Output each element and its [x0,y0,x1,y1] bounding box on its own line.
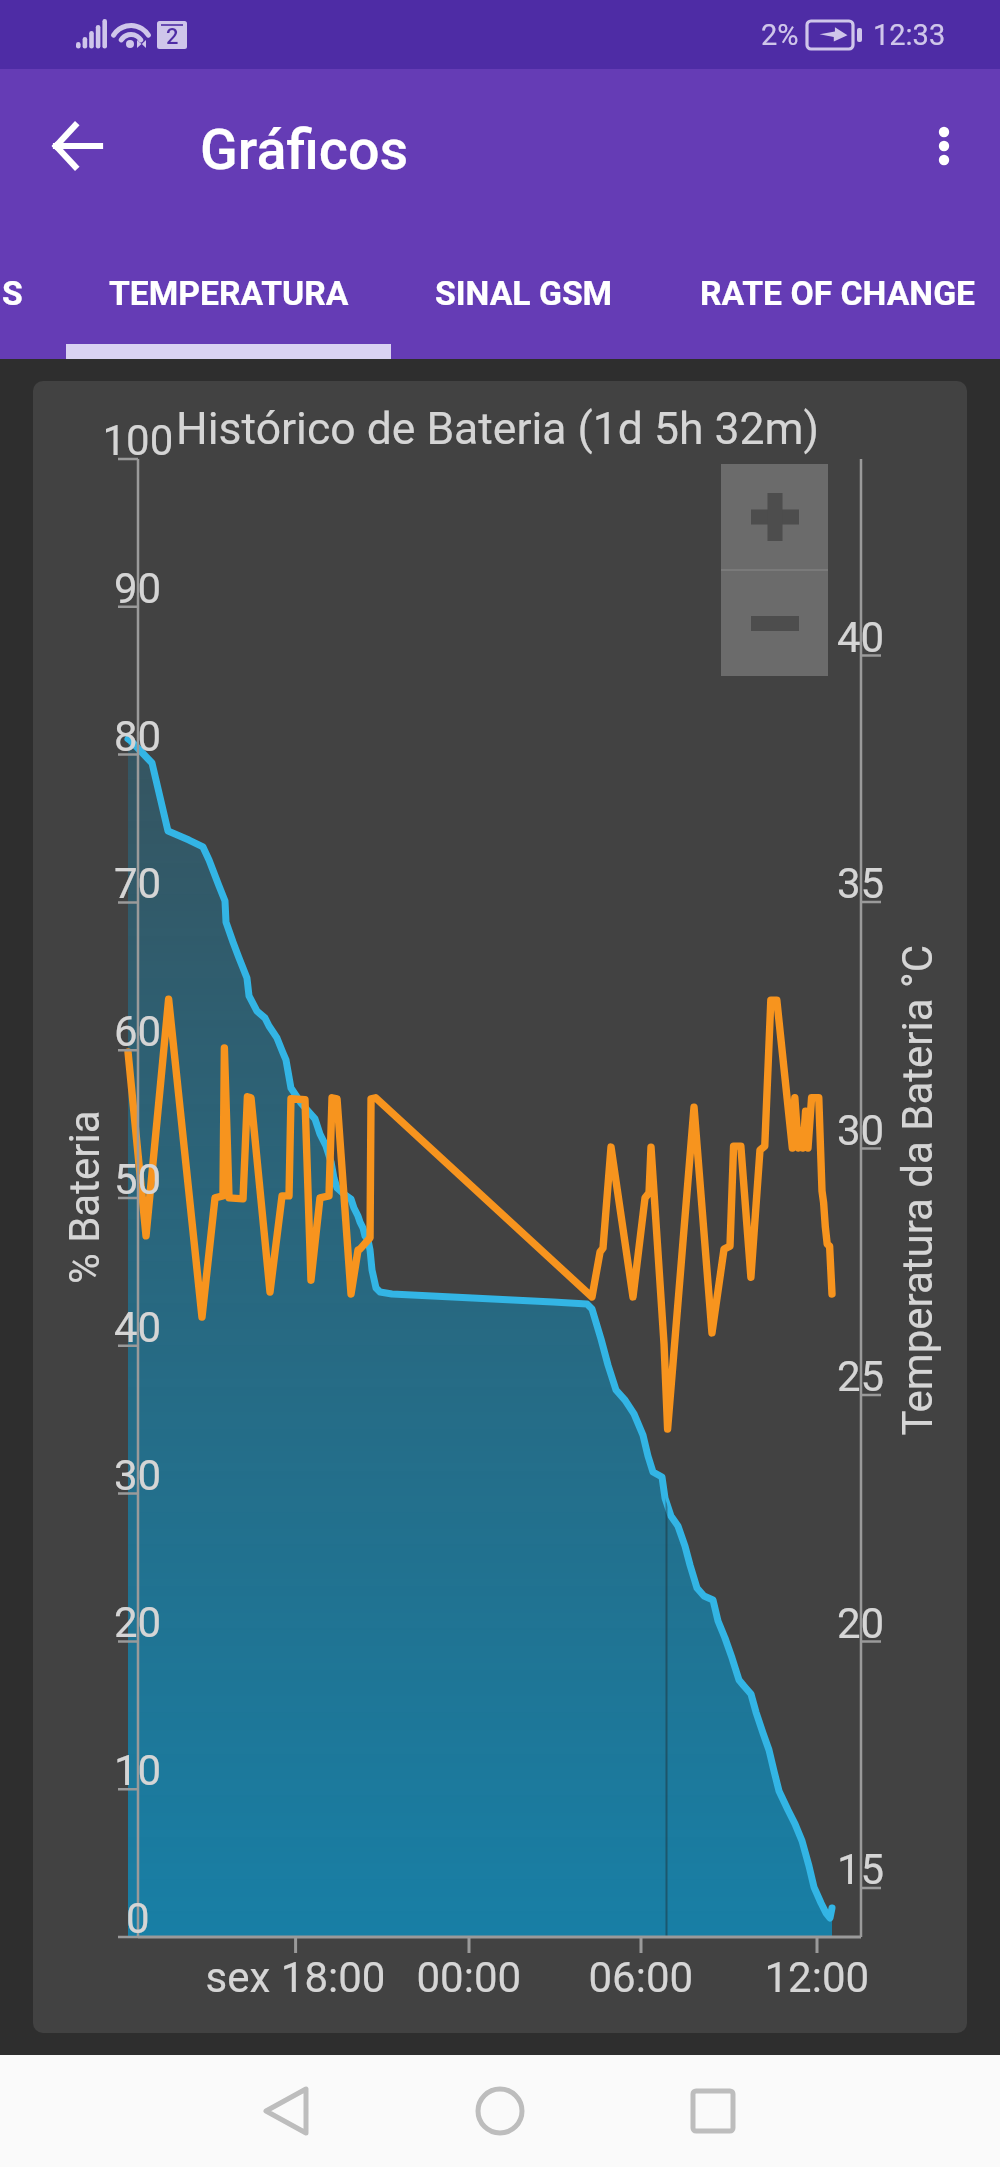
button[interactable]: TEMPERATURA [29,243,429,343]
staticText: RATE OF CHANGE [700,274,976,313]
button[interactable]: Home [440,2055,560,2167]
staticText: 2 [166,24,179,49]
button[interactable]: Zoom in [721,464,828,569]
button[interactable]: Back [33,102,121,190]
button[interactable]: More options [900,102,988,190]
button[interactable]: S [0,243,72,343]
button[interactable]: Back [226,2055,346,2167]
staticText: 12:33 [873,18,946,52]
button[interactable]: SINAL GSM [324,243,724,343]
button[interactable]: Recent apps [653,2055,773,2167]
staticText: SINAL GSM [435,274,613,313]
staticText: S [2,274,23,313]
staticText: 2% [761,18,799,52]
staticText: Gráficos [200,118,409,183]
staticText: TEMPERATURA [109,274,349,313]
button[interactable]: RATE OF CHANGE [638,243,1000,343]
button[interactable]: Zoom out [721,571,828,676]
